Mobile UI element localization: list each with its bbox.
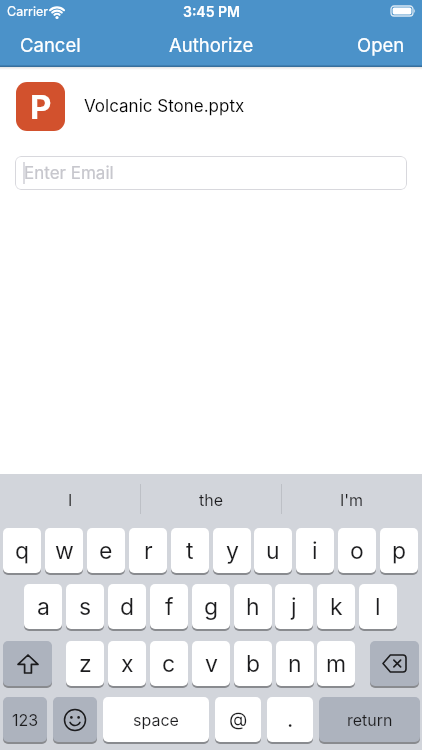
staticText: j	[291, 593, 297, 621]
button[interactable]	[370, 641, 419, 686]
staticText: Authorize	[169, 34, 254, 56]
button[interactable]: y	[213, 528, 251, 573]
button[interactable]: s	[66, 584, 104, 629]
staticText: u	[266, 537, 280, 565]
button[interactable]: a	[24, 584, 62, 629]
staticText: z	[79, 650, 92, 678]
button[interactable]: .	[267, 697, 313, 742]
staticText: c	[162, 650, 176, 678]
button[interactable]: Open	[357, 34, 405, 56]
staticText: b	[246, 650, 261, 678]
staticText: v	[205, 650, 218, 678]
staticText: @	[229, 708, 248, 731]
staticText: n	[288, 650, 302, 678]
button[interactable]: e	[87, 528, 125, 573]
button[interactable]: c	[150, 641, 188, 686]
button[interactable]: j	[275, 584, 313, 629]
button[interactable]: return	[319, 697, 420, 742]
button[interactable]: the	[141, 483, 282, 515]
button[interactable]: d	[108, 584, 146, 629]
staticText: y	[226, 537, 239, 565]
button[interactable]: g	[192, 584, 230, 629]
button[interactable]: l	[359, 584, 397, 629]
staticText: r	[144, 537, 153, 565]
staticText: 123	[12, 710, 39, 729]
staticText: Cancel	[20, 34, 81, 56]
staticText: l	[375, 593, 381, 621]
staticText: e	[99, 537, 113, 565]
staticText: the	[199, 490, 224, 509]
button[interactable]: w	[45, 528, 83, 573]
button[interactable]: x	[108, 641, 146, 686]
staticText: space	[133, 710, 179, 729]
button[interactable]: f	[150, 584, 188, 629]
button[interactable]: 123	[3, 697, 47, 742]
staticText: return	[347, 710, 393, 729]
button[interactable]: r	[129, 528, 167, 573]
staticText: s	[79, 593, 92, 621]
staticText: I'm	[340, 490, 364, 509]
staticText: g	[204, 593, 219, 621]
staticText: x	[121, 650, 134, 678]
button[interactable]: k	[317, 584, 355, 629]
staticText: f	[165, 593, 174, 621]
button[interactable]: m	[317, 641, 355, 686]
button[interactable]: @	[215, 697, 261, 742]
button[interactable]: o	[338, 528, 376, 573]
button[interactable]: P	[16, 82, 65, 131]
button[interactable]: I'm	[281, 483, 422, 515]
staticText: q	[15, 537, 30, 565]
button[interactable]	[53, 697, 97, 742]
staticText: Enter Email	[24, 163, 114, 184]
staticText: m	[326, 650, 347, 678]
staticText: w	[55, 537, 74, 565]
staticText: o	[350, 537, 364, 565]
button[interactable]: z	[66, 641, 104, 686]
staticText: Carrier	[7, 4, 48, 19]
staticText: d	[120, 593, 135, 621]
button[interactable]: Enter Email	[15, 156, 407, 190]
staticText: I	[68, 490, 73, 509]
button[interactable]: v	[192, 641, 230, 686]
button[interactable]: Cancel	[20, 30, 81, 60]
button[interactable]: b	[234, 641, 272, 686]
staticText: .	[287, 706, 294, 733]
button[interactable]: u	[254, 528, 292, 573]
staticText: Open	[357, 34, 405, 56]
staticText: 3:45 PM	[183, 3, 240, 20]
button[interactable]: space	[103, 697, 209, 742]
button[interactable]	[3, 641, 52, 686]
staticText: Volcanic Stone.pptx	[84, 96, 245, 117]
staticText: h	[246, 593, 260, 621]
staticText: a	[37, 593, 50, 621]
staticText: p	[392, 537, 407, 565]
button[interactable]: I	[0, 483, 141, 515]
button[interactable]: q	[3, 528, 41, 573]
staticText: t	[186, 537, 194, 565]
staticText: k	[330, 593, 343, 621]
staticText: P	[30, 87, 52, 127]
button[interactable]: t	[171, 528, 209, 573]
button[interactable]: h	[234, 584, 272, 629]
button[interactable]: i	[296, 528, 334, 573]
button[interactable]: n	[276, 641, 314, 686]
staticText: i	[312, 537, 318, 565]
button[interactable]: p	[380, 528, 418, 573]
